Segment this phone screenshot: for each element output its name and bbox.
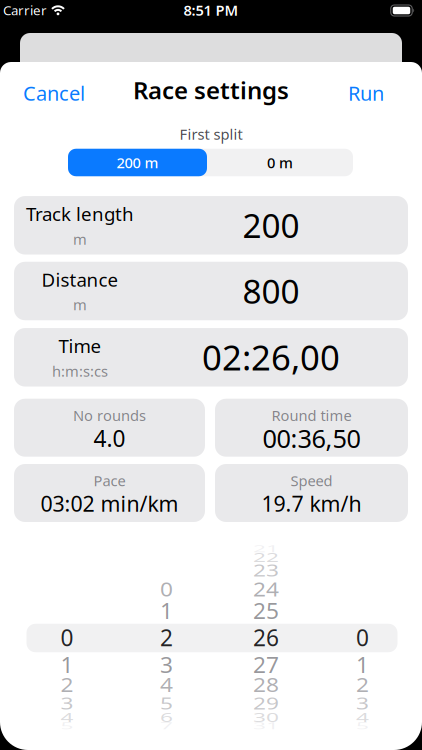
- staticText: 5: [160, 688, 173, 718]
- staticText: 1: [60, 649, 73, 679]
- staticText: 3: [356, 688, 369, 718]
- staticText: 22: [253, 542, 279, 572]
- staticText: 02:26,00: [202, 334, 340, 380]
- staticText: 6: [160, 702, 173, 732]
- button[interactable]: Speed: [215, 464, 408, 522]
- staticText: Round time: [271, 405, 351, 425]
- staticText: 4: [160, 669, 173, 699]
- staticText: 0 m: [267, 153, 293, 172]
- button[interactable]: Time: [14, 328, 408, 387]
- staticText: 3: [160, 649, 173, 679]
- staticText: 2: [356, 669, 369, 699]
- staticText: 31: [253, 710, 279, 740]
- staticText: Time: [58, 333, 101, 358]
- staticText: 1: [356, 649, 369, 679]
- staticText: 200: [242, 203, 299, 247]
- staticText: 8:51 PM: [183, 0, 238, 20]
- staticText: 5: [60, 710, 73, 740]
- button[interactable]: Round time: [215, 399, 408, 457]
- staticText: 28: [253, 669, 279, 699]
- staticText: m: [73, 229, 87, 249]
- staticText: Distance: [41, 267, 118, 292]
- staticText: 4.0: [93, 423, 125, 453]
- button[interactable]: Run: [348, 80, 384, 106]
- staticText: 21: [253, 533, 279, 563]
- staticText: 1: [160, 595, 173, 625]
- staticText: Carrier: [3, 1, 47, 19]
- staticText: Speed: [290, 471, 332, 490]
- button[interactable]: Cancel: [23, 80, 85, 106]
- staticText: Track length: [26, 201, 134, 226]
- staticText: 0: [356, 622, 369, 652]
- staticText: 7: [160, 710, 173, 740]
- staticText: 03:02 min/km: [40, 489, 178, 518]
- staticText: Race settings: [133, 74, 289, 106]
- staticText: 29: [253, 688, 279, 718]
- button[interactable]: Pace: [14, 464, 205, 522]
- staticText: 800: [242, 269, 299, 313]
- staticText: 19.7 km/h: [261, 489, 361, 518]
- button[interactable]: No rounds: [14, 399, 205, 457]
- staticText: 00:36,50: [262, 421, 360, 455]
- staticText: Cancel: [23, 80, 85, 106]
- staticText: No rounds: [73, 405, 146, 425]
- staticText: 4: [60, 702, 73, 732]
- button[interactable]: Distance: [14, 262, 408, 320]
- button[interactable]: 200 m: [68, 149, 207, 176]
- staticText: 27: [253, 649, 279, 679]
- staticText: 30: [253, 702, 279, 732]
- staticText: 2: [160, 622, 173, 652]
- staticText: 26: [253, 622, 279, 652]
- staticText: 2: [60, 669, 73, 699]
- staticText: Run: [348, 80, 384, 106]
- staticText: 5: [356, 710, 369, 740]
- staticText: 3: [60, 688, 73, 718]
- button[interactable]: 0 m: [207, 149, 353, 176]
- staticText: First split: [179, 124, 242, 144]
- staticText: Pace: [93, 471, 125, 490]
- staticText: 24: [253, 574, 279, 604]
- staticText: 200 m: [116, 153, 158, 172]
- staticText: h:m:s:cs: [52, 361, 108, 381]
- staticText: 4: [356, 702, 369, 732]
- staticText: 23: [253, 555, 279, 585]
- staticText: 0: [160, 574, 173, 604]
- button[interactable]: Track length: [14, 196, 408, 255]
- staticText: m: [73, 295, 87, 314]
- staticText: 0: [60, 622, 73, 652]
- staticText: 25: [253, 595, 279, 625]
